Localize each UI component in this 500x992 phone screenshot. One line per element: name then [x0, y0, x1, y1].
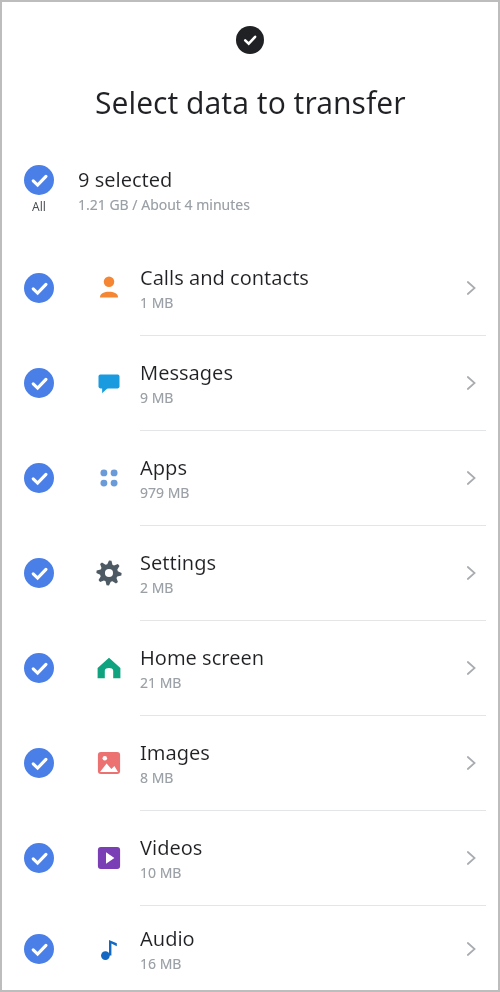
- staticText: Images: [140, 739, 210, 766]
- staticText: 1.21 GB / About 4 minutes: [78, 195, 250, 214]
- staticText: 8 MB: [140, 768, 174, 787]
- button[interactable]: Calls and contacts: [0, 241, 500, 335]
- button[interactable]: Messages: [0, 336, 500, 430]
- staticText: Select data to transfer: [95, 82, 406, 123]
- button[interactable]: Home screen: [0, 621, 500, 715]
- staticText: 10 MB: [140, 863, 182, 882]
- staticText: 16 MB: [140, 954, 182, 973]
- button[interactable]: Videos: [0, 811, 500, 905]
- staticText: 1 MB: [140, 293, 174, 312]
- staticText: Videos: [140, 834, 203, 861]
- button[interactable]: All: [0, 165, 500, 229]
- button[interactable]: Settings: [0, 526, 500, 620]
- staticText: Home screen: [140, 644, 265, 671]
- button[interactable]: Audio: [0, 906, 500, 992]
- button[interactable]: Apps: [0, 431, 500, 525]
- staticText: All: [32, 198, 46, 214]
- button[interactable]: Images: [0, 716, 500, 810]
- button[interactable]: Transfer complete: [236, 26, 264, 54]
- staticText: 2 MB: [140, 578, 174, 597]
- staticText: Calls and contacts: [140, 264, 309, 291]
- staticText: Audio: [140, 925, 195, 952]
- staticText: 9 selected: [78, 166, 173, 193]
- staticText: 21 MB: [140, 673, 182, 692]
- staticText: 9 MB: [140, 388, 174, 407]
- staticText: Apps: [140, 454, 187, 481]
- staticText: Messages: [140, 359, 233, 386]
- staticText: 979 MB: [140, 483, 190, 502]
- staticText: Settings: [140, 549, 217, 576]
